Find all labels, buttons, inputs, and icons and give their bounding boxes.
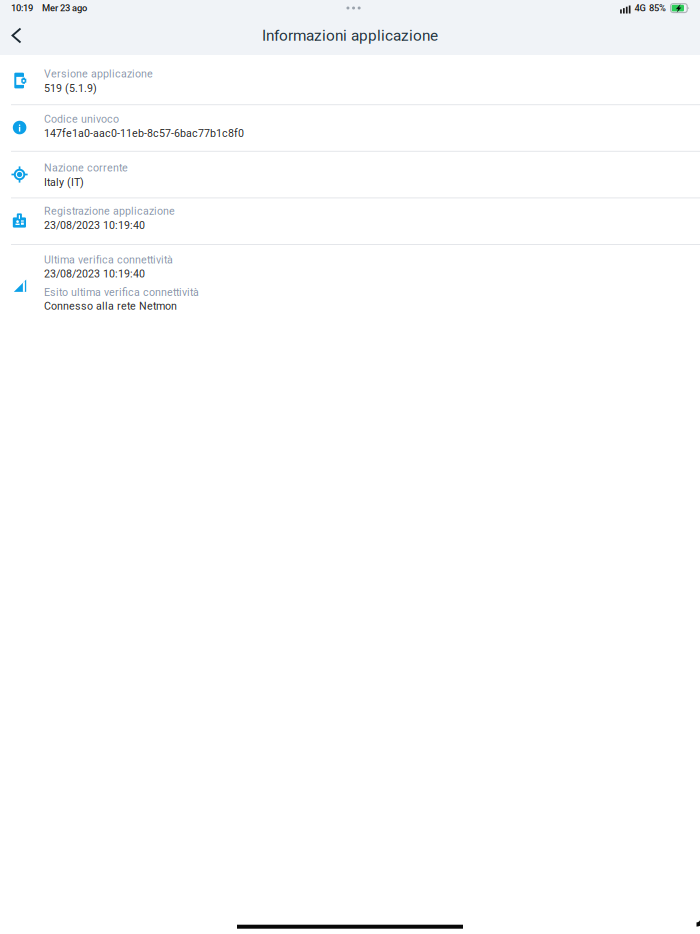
button[interactable]: Codice univoco: [0, 105, 700, 151]
staticText: Codice univoco: [44, 113, 119, 125]
staticText: 10:19: [11, 2, 33, 13]
button[interactable]: Registrazione applicazione: [0, 198, 700, 244]
staticText: 85%: [649, 2, 666, 13]
staticText: Informazioni applicazione: [262, 26, 438, 44]
staticText: 519 (5.1.9): [44, 82, 97, 94]
staticText: 147fe1a0-aac0-11eb-8c57-6bac77b1c8f0: [44, 127, 244, 140]
staticText: Italy (IT): [44, 176, 84, 188]
staticText: Esito ultima verifica connettività: [44, 286, 199, 298]
staticText: 23/08/2023 10:19:40: [44, 267, 145, 280]
button[interactable]: Nazione corrente: [0, 152, 700, 197]
staticText: Connesso alla rete Netmon: [44, 300, 177, 312]
staticText: 23/08/2023 10:19:40: [44, 219, 145, 232]
staticText: 4G: [634, 2, 645, 13]
staticText: Mer 23 ago: [42, 2, 87, 13]
button[interactable]: Ultima verifica connettività: [0, 245, 700, 321]
staticText: Ultima verifica connettività: [44, 254, 173, 266]
button[interactable]: Back: [0, 17, 36, 54]
staticText: Nazione corrente: [44, 162, 128, 174]
staticText: Versione applicazione: [44, 68, 153, 80]
button[interactable]: Versione applicazione: [0, 55, 700, 104]
staticText: Registrazione applicazione: [44, 205, 175, 217]
